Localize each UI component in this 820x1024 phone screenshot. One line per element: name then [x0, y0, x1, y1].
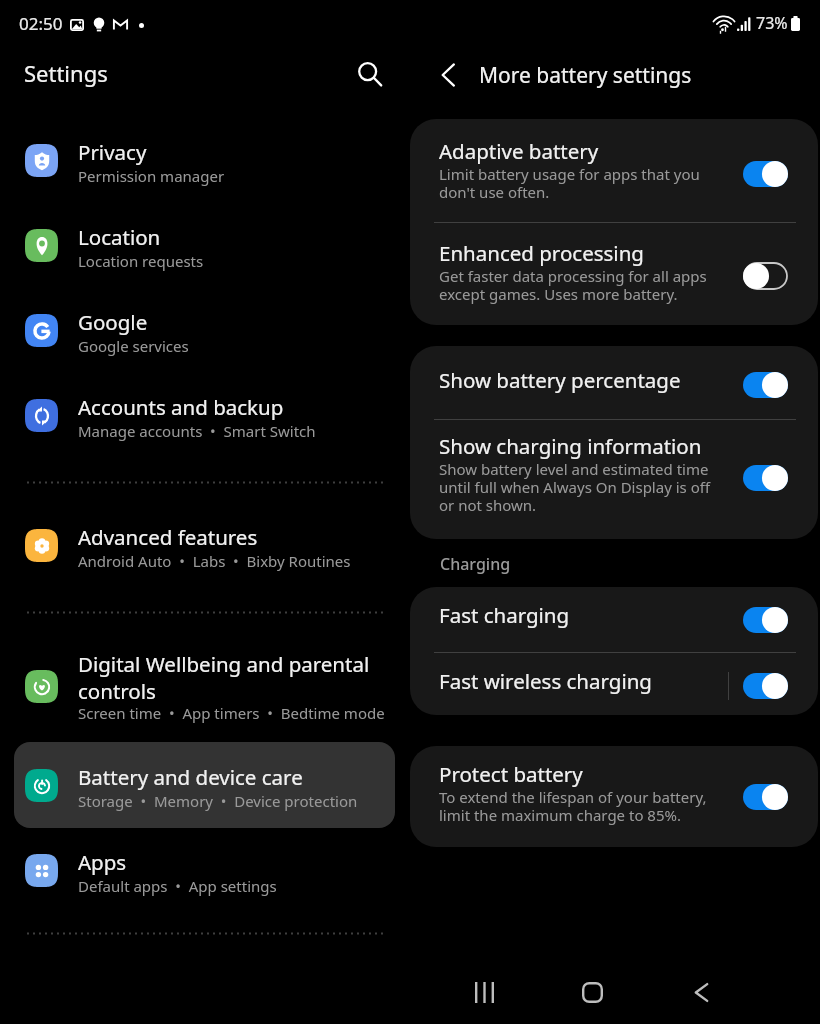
button[interactable]: Battery and device care: [0, 752, 410, 820]
staticText: Accounts and backup: [78, 393, 284, 421]
staticText: or not shown.: [439, 495, 537, 515]
staticText: Fast wireless charging: [439, 667, 652, 695]
staticText: Apps: [78, 848, 127, 876]
button[interactable]: Off: [743, 262, 788, 290]
staticText: Screen time • App timers • Bedtime mode: [78, 703, 385, 723]
button[interactable]: Apps: [0, 837, 410, 905]
staticText: except games. Uses more battery.: [439, 284, 678, 304]
staticText: Adaptive battery: [439, 137, 599, 165]
staticText: don't use often.: [439, 182, 550, 202]
button[interactable]: Google: [0, 297, 410, 365]
button[interactable]: Home: [562, 962, 622, 1022]
staticText: 73%: [756, 12, 788, 34]
button[interactable]: Search: [349, 54, 391, 96]
staticText: More battery settings: [479, 61, 692, 90]
staticText: Location: [78, 223, 161, 251]
button[interactable]: Recents: [454, 962, 514, 1022]
button[interactable]: Back: [428, 55, 468, 95]
staticText: until full when Always On Display is off: [439, 477, 711, 497]
button[interactable]: Fast wireless charging: [410, 657, 818, 711]
staticText: Battery and device care: [78, 763, 303, 791]
button[interactable]: Fast charging: [410, 591, 818, 645]
staticText: Show battery percentage: [439, 366, 681, 394]
button[interactable]: Adaptive battery: [410, 127, 818, 217]
button[interactable]: Digital Wellbeing and parental: [0, 639, 410, 743]
button[interactable]: Location: [0, 212, 410, 280]
button[interactable]: Show battery percentage: [410, 356, 818, 410]
staticText: limit the maximum charge to 85%.: [439, 805, 682, 825]
staticText: Advanced features: [78, 523, 258, 551]
staticText: 02:50: [19, 12, 63, 35]
staticText: Location requests: [78, 251, 204, 271]
staticText: Android Auto • Labs • Bixby Routines: [78, 551, 351, 571]
button[interactable]: On: [743, 783, 788, 811]
staticText: Enhanced processing: [439, 239, 644, 267]
staticText: Charging: [440, 553, 511, 575]
staticText: Permission manager: [78, 166, 225, 186]
button[interactable]: Accounts and backup: [0, 382, 410, 450]
button[interactable]: [14, 742, 395, 828]
button[interactable]: On: [743, 464, 788, 492]
staticText: Google: [78, 308, 148, 336]
staticText: To extend the lifespan of your battery,: [439, 787, 707, 807]
staticText: Show battery level and estimated time: [439, 459, 709, 479]
staticText: Digital Wellbeing and parental: [78, 650, 370, 678]
button[interactable]: Show charging information: [410, 422, 818, 530]
staticText: Google services: [78, 336, 189, 356]
button[interactable]: Advanced features: [0, 512, 410, 580]
button[interactable]: Privacy: [0, 127, 410, 195]
button[interactable]: Back: [671, 962, 731, 1022]
staticText: Limit battery usage for apps that you: [439, 164, 700, 184]
staticText: controls: [78, 677, 156, 705]
button[interactable]: On: [743, 672, 788, 700]
button[interactable]: Enhanced processing: [410, 229, 818, 319]
button[interactable]: On: [743, 160, 788, 188]
button[interactable]: Protect battery: [410, 750, 818, 840]
staticText: Settings: [24, 58, 108, 88]
staticText: Show charging information: [439, 432, 702, 460]
staticText: Storage • Memory • Device protection: [78, 791, 358, 811]
button[interactable]: On: [743, 371, 788, 399]
staticText: Protect battery: [439, 760, 583, 788]
staticText: Fast charging: [439, 601, 570, 629]
staticText: Default apps • App settings: [78, 876, 277, 896]
staticText: Manage accounts • Smart Switch: [78, 421, 316, 441]
staticText: Get faster data processing for all apps: [439, 266, 707, 286]
staticText: Privacy: [78, 138, 147, 166]
button[interactable]: On: [743, 606, 788, 634]
